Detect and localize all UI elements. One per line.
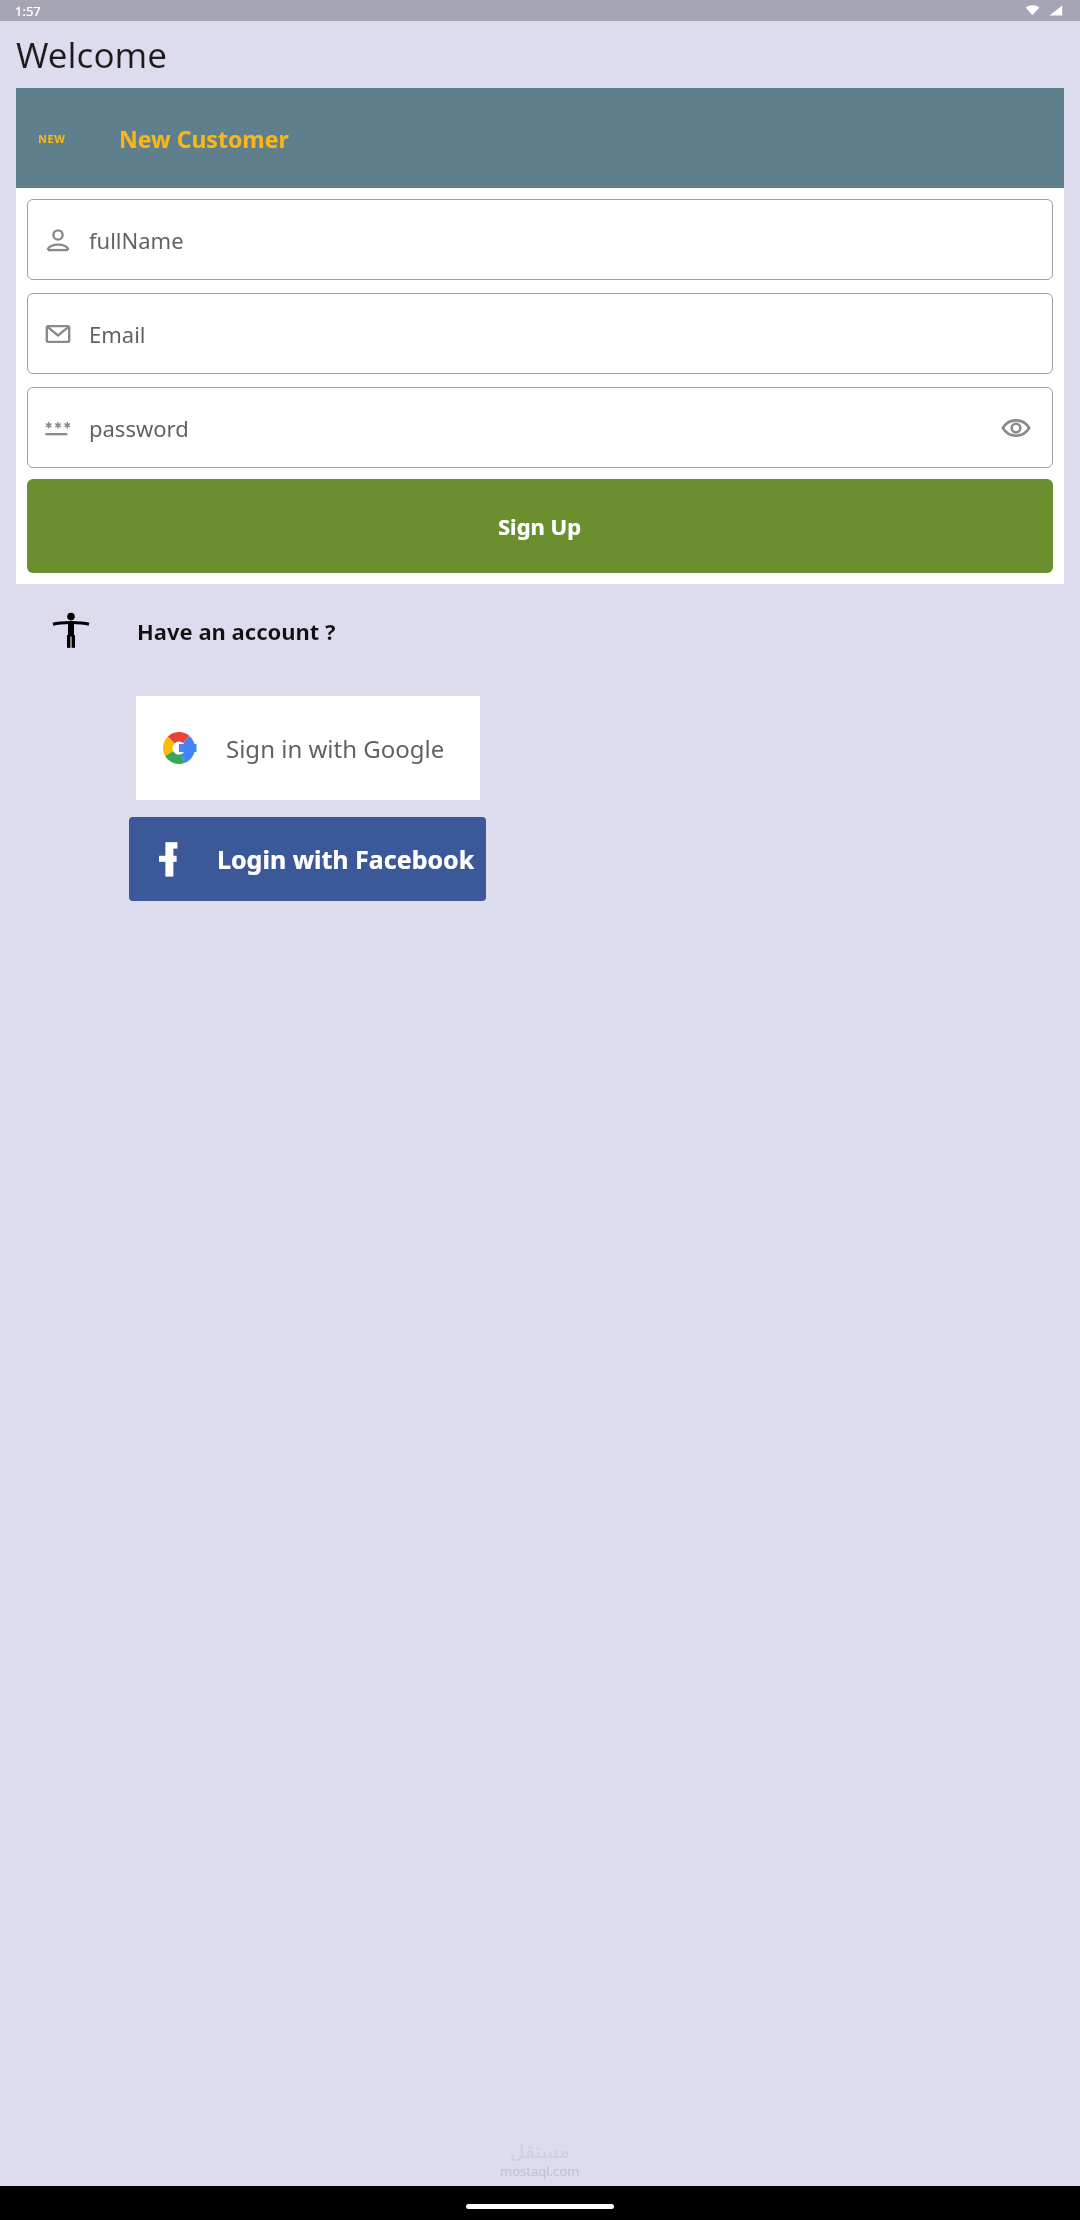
staticText: Login with Facebook: [217, 842, 475, 876]
staticText: Welcome: [16, 31, 168, 79]
staticText: mostaql.com: [500, 2162, 580, 2180]
staticText: password: [89, 413, 189, 443]
button[interactable]: password: [27, 387, 1053, 468]
button[interactable]: Sign in with Google: [136, 696, 480, 800]
button[interactable]: Email: [27, 293, 1053, 374]
staticText: NEW: [38, 131, 66, 146]
button[interactable]: Have an account ?: [137, 616, 336, 646]
button[interactable]: fullName: [27, 199, 1053, 280]
staticText: New Customer: [119, 123, 289, 154]
staticText: 1:57: [15, 2, 41, 20]
button[interactable]: Accessibility: [50, 610, 92, 652]
staticText: Sign in with Google: [226, 732, 445, 765]
staticText: Email: [89, 319, 146, 349]
staticText: Sign Up: [498, 511, 582, 541]
staticText: fullName: [89, 225, 184, 255]
staticText: Have an account ?: [137, 616, 336, 646]
button[interactable]: Login with Facebook: [129, 817, 486, 901]
staticText: مستقل: [510, 2139, 570, 2162]
button[interactable]: Toggle password visibility: [993, 405, 1039, 451]
button[interactable]: Sign Up: [27, 479, 1053, 573]
